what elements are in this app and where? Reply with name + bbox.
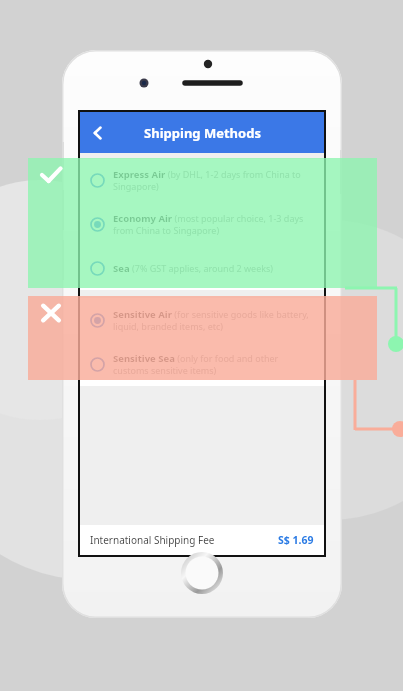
staticText: International Shipping Fee [90,533,215,547]
button[interactable]: Sea (7% GST applies, around 2 weeks) [80,247,324,290]
other: Not allowed [37,299,65,327]
staticText: S$ 1.69 [278,533,314,547]
other: Allowed [36,160,66,190]
button[interactable]: Economy Air (most popular choice, 1-3 da… [80,202,324,247]
staticText: Sea (7% GST applies, around 2 weeks) [113,262,274,275]
staticText: Shipping Methods [144,124,261,142]
button[interactable]: Express Air (by DHL, 1-2 days from China… [80,159,324,202]
staticText: Economy Air (most popular choice, 1-3 da… [113,212,314,237]
staticText: Sensitive Air (for sensitive goods like … [113,308,314,333]
button[interactable]: Sensitive Sea (only for food and other c… [80,342,324,386]
button[interactable]: Back [80,115,116,151]
staticText: Express Air (by DHL, 1-2 days from China… [113,168,314,193]
button[interactable]: Sensitive Air (for sensitive goods like … [80,298,324,342]
button[interactable]: International Shipping Fee [80,525,324,555]
staticText: Sensitive Sea (only for food and other c… [113,352,314,377]
